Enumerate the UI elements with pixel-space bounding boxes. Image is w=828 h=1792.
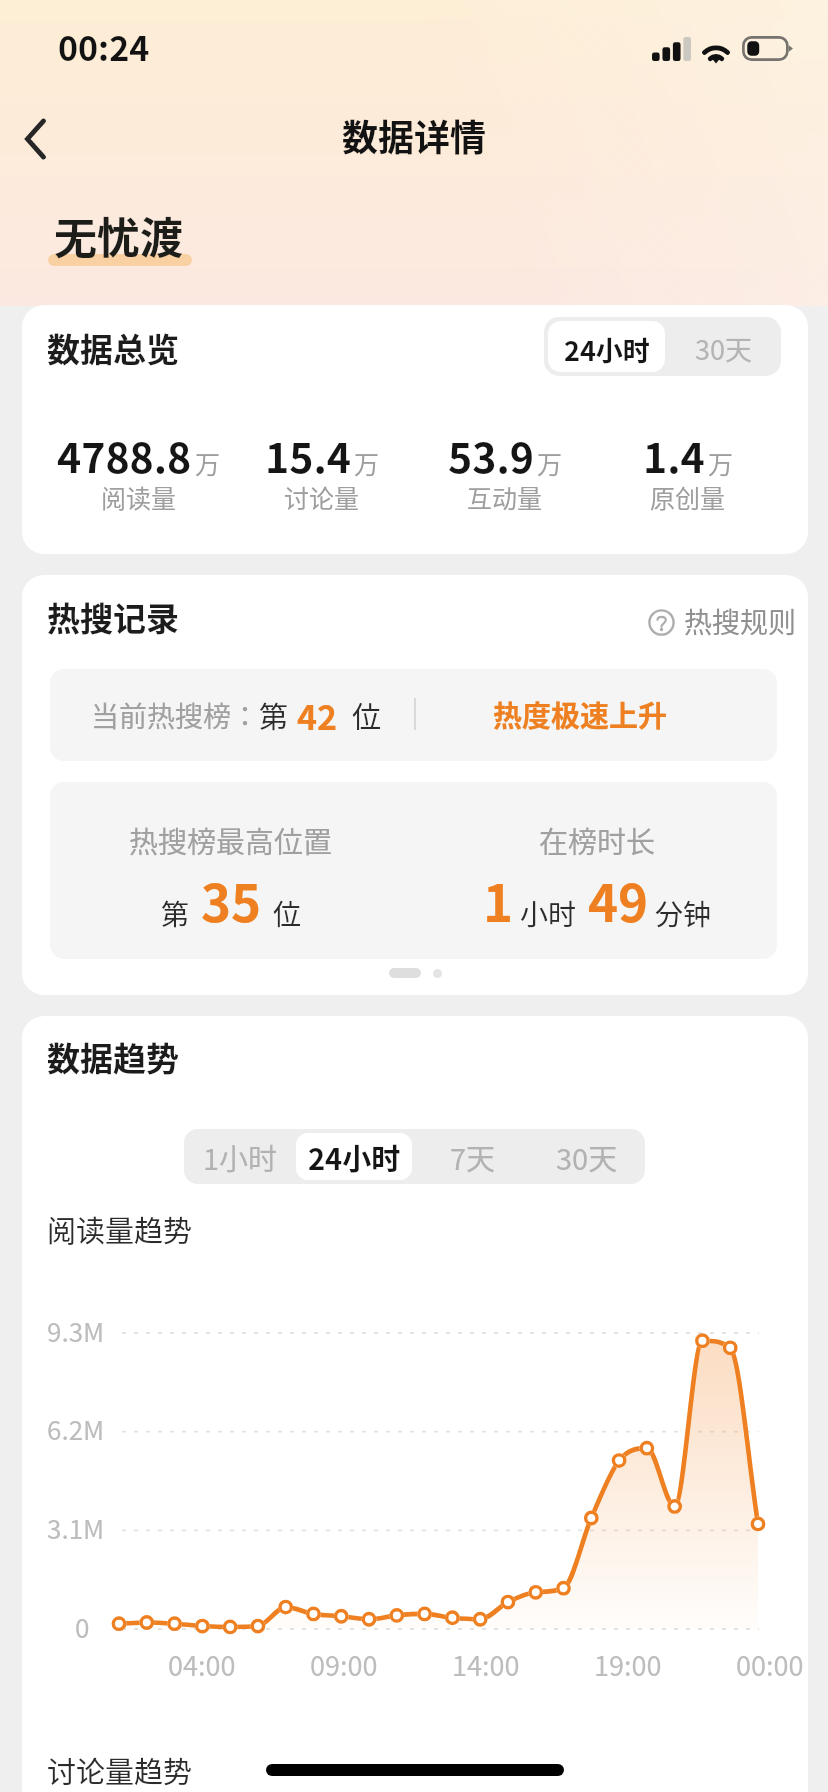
staticText: 42: [297, 691, 338, 740]
staticText: 无忧渡: [54, 204, 183, 266]
staticText: 讨论量: [284, 479, 360, 515]
staticText: 04:00: [168, 1645, 236, 1684]
staticText: 4788.8: [57, 425, 192, 484]
button[interactable]: 24小时: [296, 1129, 412, 1184]
staticText: 数据趋势: [47, 1033, 179, 1081]
staticText: 35: [201, 863, 262, 937]
staticText: 00:00: [736, 1645, 804, 1684]
staticText: 原创量: [650, 479, 726, 515]
staticText: 53.9: [448, 425, 534, 484]
staticText: 万: [195, 445, 221, 481]
button[interactable]: 7天: [415, 1129, 531, 1184]
staticText: 09:00: [310, 1645, 378, 1684]
button[interactable]: 1小时: [184, 1129, 298, 1184]
staticText: 7天: [450, 1136, 496, 1178]
staticText: 24小时: [308, 1136, 401, 1178]
button[interactable]: Back: [3, 107, 67, 171]
staticText: 在榜时长: [539, 819, 656, 861]
staticText: 阅读量趋势: [47, 1208, 193, 1250]
staticText: 14:00: [452, 1645, 520, 1684]
staticText: 位: [273, 893, 302, 934]
staticText: 分钟: [655, 893, 712, 934]
staticText: 阅读量: [101, 479, 177, 515]
staticText: 热搜记录: [47, 593, 179, 641]
staticText: 第: [161, 893, 190, 934]
staticText: 49: [588, 863, 649, 937]
staticText: 万: [354, 445, 380, 481]
staticText: 1.4: [643, 425, 705, 484]
staticText: 0: [75, 1608, 90, 1646]
staticText: 当前热搜榜：: [91, 695, 260, 736]
button[interactable]: 30天: [669, 319, 777, 376]
staticText: 30天: [695, 329, 752, 368]
staticText: 数据总览: [47, 324, 179, 372]
staticText: 万: [537, 445, 563, 481]
staticText: 1小时: [203, 1136, 278, 1178]
staticText: 讨论量趋势: [47, 1749, 193, 1791]
staticText: 位: [352, 694, 382, 736]
staticText: 30天: [556, 1136, 618, 1178]
staticText: 热搜规则: [684, 601, 797, 642]
staticText: 24小时: [564, 330, 650, 369]
staticText: 3.1M: [47, 1509, 105, 1547]
staticText: 小时: [520, 893, 577, 934]
staticText: 6.2M: [47, 1410, 105, 1448]
staticText: 互动量: [467, 479, 543, 515]
button[interactable]: 30天: [529, 1129, 645, 1184]
staticText: 数据详情: [342, 109, 487, 161]
staticText: 热搜榜最高位置: [129, 819, 333, 861]
staticText: 00:24: [58, 22, 150, 71]
staticText: 第: [259, 694, 289, 736]
staticText: 万: [708, 445, 734, 481]
button[interactable]: 24小时: [548, 320, 665, 376]
button[interactable]: 热搜规则: [642, 593, 808, 649]
staticText: 9.3M: [47, 1312, 105, 1350]
staticText: 热度极速上升: [493, 693, 668, 735]
staticText: 15.4: [265, 425, 351, 484]
staticText: 1: [483, 863, 514, 937]
staticText: 19:00: [594, 1645, 662, 1684]
